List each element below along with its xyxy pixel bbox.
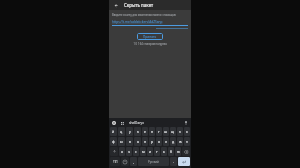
staticText: ?1П	[113, 160, 118, 164]
staticText: 1 0 1 64 стикеров нагрузка	[133, 42, 167, 46]
staticText: Скрыть пакет	[124, 2, 154, 8]
staticText: у	[129, 129, 131, 134]
staticText: л	[165, 139, 167, 144]
button[interactable]: х	[184, 127, 190, 136]
button[interactable]: й	[110, 127, 117, 136]
staticText: б	[170, 149, 173, 154]
staticText: щ	[171, 129, 175, 134]
staticText: я	[121, 149, 123, 154]
button[interactable]: л	[163, 137, 169, 146]
staticText: ц	[120, 129, 123, 134]
staticText: ,	[133, 159, 134, 164]
staticText: ч	[128, 149, 130, 154]
staticText: т	[156, 149, 158, 154]
button[interactable]: з	[177, 127, 183, 136]
button[interactable]: Backspace	[182, 147, 190, 156]
staticText: ы	[120, 139, 123, 144]
button[interactable]: Shift	[110, 147, 118, 156]
button[interactable]: ?1П	[110, 157, 120, 166]
button[interactable]: Русский	[138, 157, 169, 166]
button[interactable]: п	[142, 137, 148, 146]
button[interactable]: н	[149, 127, 155, 136]
button[interactable]: с	[133, 147, 139, 156]
button[interactable]: а	[134, 137, 141, 146]
button[interactable]: г	[156, 127, 162, 136]
button[interactable]: е	[142, 127, 148, 136]
staticText: п	[144, 139, 147, 144]
button[interactable]: я	[119, 147, 125, 156]
staticText: ж	[179, 139, 182, 144]
staticText: з	[179, 129, 181, 134]
staticText: н	[151, 129, 154, 134]
staticText: й	[112, 129, 115, 134]
button[interactable]: ы	[118, 137, 125, 146]
button[interactable]: ь	[161, 147, 167, 156]
button[interactable]: ч	[126, 147, 132, 156]
button[interactable]: ю	[175, 147, 181, 156]
button[interactable]: .	[170, 157, 177, 166]
button[interactable]: к	[134, 127, 141, 136]
staticText: е	[144, 129, 146, 134]
button[interactable]: ф	[110, 137, 117, 146]
staticText: ф	[112, 139, 115, 144]
staticText: .	[173, 159, 174, 164]
staticText: к	[137, 129, 139, 134]
button[interactable]: ш	[163, 127, 169, 136]
button[interactable]: б	[168, 147, 174, 156]
button[interactable]: у	[126, 127, 133, 136]
staticText: с	[135, 149, 137, 154]
staticText: ь	[163, 149, 165, 154]
button[interactable]: ж	[177, 137, 183, 146]
staticText: ш	[164, 129, 168, 134]
button[interactable]: щ	[170, 127, 176, 136]
button[interactable]: Voice input	[183, 120, 189, 126]
staticText: в	[129, 139, 131, 144]
staticText: г	[158, 129, 160, 134]
button[interactable]: Принять	[137, 33, 163, 40]
staticText: о	[158, 139, 161, 144]
staticText: д	[172, 139, 175, 144]
button[interactable]: Back	[112, 1, 120, 9]
button[interactable]: р	[149, 137, 155, 146]
staticText: https://t.me/addstickers/AdZSanp	[112, 20, 188, 24]
button[interactable]: Emoji	[121, 157, 129, 166]
button[interactable]: о	[156, 137, 162, 146]
button[interactable]: э	[184, 137, 190, 146]
staticText: м	[142, 149, 145, 154]
button[interactable]: и	[147, 147, 153, 156]
button[interactable]: https://t.me/addstickers/AdZSanp	[112, 20, 188, 26]
staticText: р	[151, 139, 154, 144]
button[interactable]: д	[170, 137, 176, 146]
button[interactable]: в	[126, 137, 133, 146]
staticText: а	[137, 139, 139, 144]
staticText: э	[186, 139, 188, 144]
staticText: и	[149, 149, 152, 154]
button[interactable]: м	[140, 147, 146, 156]
button[interactable]: Keyboard assistant	[111, 120, 117, 126]
staticText: Русский	[148, 160, 159, 164]
button[interactable]: ц	[118, 127, 125, 136]
staticText: shelDaryx	[129, 121, 183, 125]
staticText: х	[186, 129, 188, 134]
button[interactable]: Enter	[178, 157, 190, 166]
staticText: Принять	[143, 35, 157, 39]
button[interactable]: ,	[130, 157, 137, 166]
staticText: Введите ссылку для изменения пакета с по…	[112, 13, 188, 17]
staticText: ю	[177, 149, 180, 154]
button[interactable]: Clipboard	[119, 120, 125, 126]
button[interactable]: т	[154, 147, 160, 156]
